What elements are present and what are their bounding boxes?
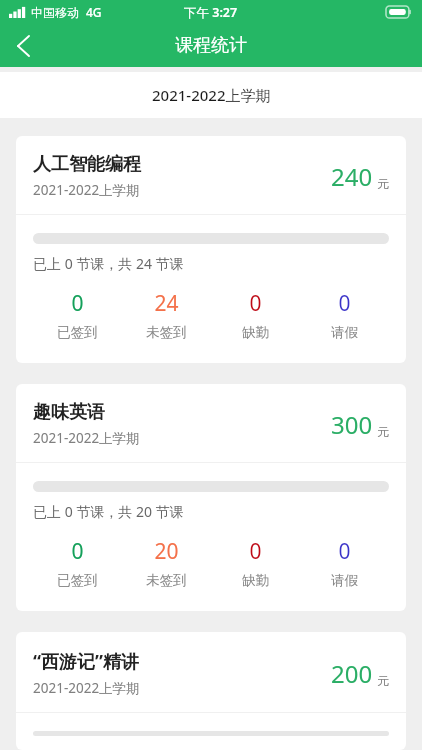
staticText: 240 (331, 160, 373, 193)
button[interactable]: 0 (33, 537, 122, 589)
button[interactable]: 0 (300, 289, 389, 341)
staticText: 未签到 (146, 572, 187, 589)
staticText: 中国移动 (31, 5, 79, 20)
staticText: 0 (249, 537, 262, 566)
staticText: 已上 0 节课，共 24 节课 (33, 254, 184, 273)
staticText: 2021-2022上学期 (33, 429, 140, 447)
staticText: 0 (71, 289, 84, 318)
staticText: 请假 (331, 324, 358, 341)
button[interactable]: “西游记”精讲 (16, 632, 406, 750)
staticText: 缺勤 (242, 324, 269, 341)
staticText: 未签到 (146, 324, 187, 341)
staticText: 下午 3:27 (184, 4, 238, 21)
staticText: 课程统计 (175, 34, 247, 57)
button[interactable]: 0 (33, 289, 122, 341)
button[interactable]: 0 (211, 289, 300, 341)
staticText: 0 (338, 289, 351, 318)
staticText: 2021-2022上学期 (33, 679, 140, 697)
staticText: “西游记”精讲 (33, 649, 140, 674)
staticText: 缺勤 (242, 572, 269, 589)
button[interactable]: 0 (300, 537, 389, 589)
button[interactable]: 返回 (0, 24, 46, 67)
staticText: 2021-2022上学期 (152, 85, 271, 105)
staticText: 趣味英语 (33, 401, 105, 424)
staticText: 20 (154, 537, 179, 566)
staticText: 请假 (331, 572, 358, 589)
staticText: 元 (377, 176, 389, 191)
button[interactable]: 20 (122, 537, 211, 589)
staticText: 2021-2022上学期 (33, 181, 140, 199)
staticText: 0 (71, 537, 84, 566)
staticText: 0 (338, 537, 351, 566)
staticText: 24 (154, 289, 179, 318)
staticText: 200 (331, 657, 373, 690)
staticText: 已签到 (57, 572, 98, 589)
staticText: 已签到 (57, 324, 98, 341)
button[interactable]: 0 (211, 537, 300, 589)
button[interactable]: 24 (122, 289, 211, 341)
staticText: 元 (377, 424, 389, 439)
staticText: 已上 0 节课，共 20 节课 (33, 502, 184, 521)
staticText: 元 (377, 673, 389, 688)
staticText: 0 (249, 289, 262, 318)
staticText: 人工智能编程 (33, 153, 141, 176)
staticText: 300 (331, 408, 373, 441)
staticText: 4G (86, 4, 102, 20)
button[interactable]: 人工智能编程 (16, 136, 406, 363)
button[interactable]: 趣味英语 (16, 384, 406, 611)
